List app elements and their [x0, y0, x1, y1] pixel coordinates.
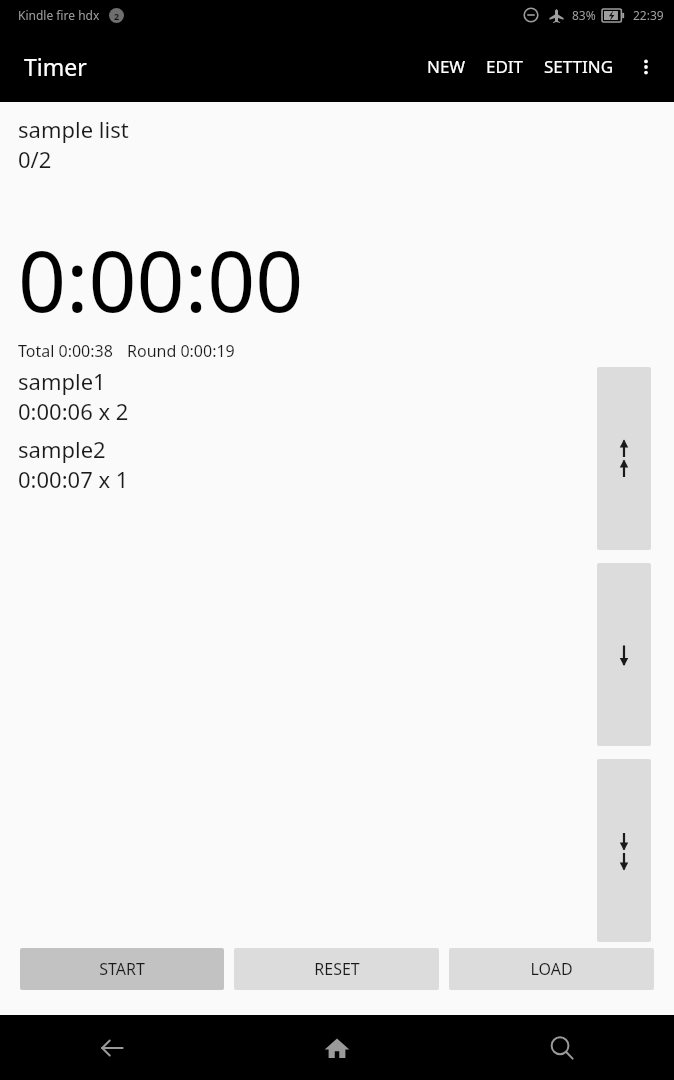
staticText: sample1 [18, 366, 106, 396]
staticText: LOAD [530, 958, 573, 980]
staticText: 0:00:06 x 2 [18, 396, 129, 426]
staticText: 0/2 [18, 144, 52, 174]
staticText: Total 0:00:38 [18, 340, 113, 362]
staticText: NEW [427, 55, 466, 78]
button[interactable]: sample1 [18, 366, 543, 426]
button[interactable]: EDIT [476, 43, 534, 90]
staticText: SETTING [544, 55, 614, 78]
button[interactable]: More options [624, 45, 668, 89]
staticText: 22:39 [633, 7, 664, 23]
staticText: 83% [572, 7, 596, 23]
button[interactable]: Back [0, 1015, 224, 1080]
button[interactable]: Move down [597, 563, 651, 746]
button[interactable]: NEW [417, 43, 476, 90]
staticText: EDIT [486, 55, 524, 78]
staticText: 0:00:00 [18, 222, 304, 336]
staticText: sample2 [18, 434, 106, 464]
staticText: Timer [24, 51, 87, 82]
button[interactable]: Home [224, 1015, 449, 1080]
button[interactable]: Move down fast [597, 759, 651, 942]
staticText: sample list [18, 114, 129, 144]
button[interactable]: sample2 [18, 434, 543, 494]
button[interactable]: START [20, 948, 224, 990]
button[interactable]: LOAD [449, 948, 654, 990]
button[interactable]: SETTING [534, 43, 624, 90]
staticText: Round 0:00:19 [127, 340, 235, 362]
button[interactable]: Search [449, 1015, 674, 1080]
staticText: Kindle fire hdx [18, 7, 100, 23]
staticText: 2 [114, 10, 120, 22]
staticText: 0:00:07 x 1 [18, 464, 129, 494]
button[interactable]: RESET [234, 948, 439, 990]
button[interactable]: Move up fast [597, 367, 651, 550]
staticText: START [99, 958, 145, 980]
staticText: RESET [314, 958, 360, 980]
